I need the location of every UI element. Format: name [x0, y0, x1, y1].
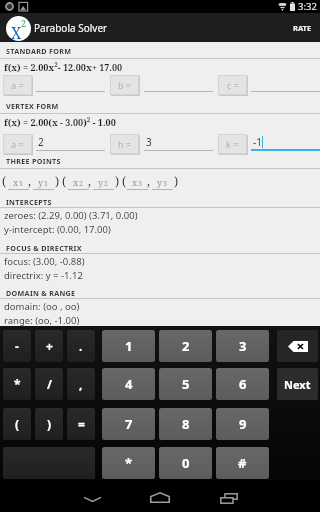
button[interactable]: .	[67, 330, 95, 362]
staticText: ,	[147, 173, 151, 189]
staticText: RATE	[293, 23, 312, 33]
button[interactable]: Home	[138, 480, 182, 512]
staticText: ,	[28, 173, 32, 189]
staticText: x	[13, 176, 19, 188]
button[interactable]: *	[102, 447, 155, 479]
button[interactable]	[36, 75, 105, 92]
button[interactable]: 9	[216, 408, 269, 440]
button[interactable]: -1	[251, 134, 320, 151]
staticText: +	[46, 338, 53, 354]
staticText: 3	[239, 337, 247, 355]
staticText: 8	[182, 415, 190, 433]
staticText: /	[47, 376, 52, 392]
button[interactable]: 3	[144, 134, 213, 151]
staticText: 1	[19, 179, 23, 189]
button[interactable]	[251, 75, 320, 92]
button[interactable]: /	[35, 368, 63, 400]
staticText: 6	[239, 375, 247, 393]
staticText: INTERCEPTS	[6, 197, 52, 207]
staticText: 0	[182, 454, 190, 472]
staticText: )	[174, 173, 179, 189]
staticText: )	[47, 416, 52, 432]
button[interactable]: Next	[277, 368, 318, 400]
staticText: y	[38, 176, 44, 188]
button[interactable]: k =	[218, 134, 248, 154]
button[interactable]: Delete	[277, 330, 318, 362]
staticText: 2	[182, 337, 190, 355]
staticText: Next	[284, 377, 311, 392]
button[interactable]: (	[3, 408, 31, 440]
button[interactable]: y	[152, 170, 173, 190]
staticText: )	[115, 173, 120, 189]
staticText: f(x) = 2.00x²- 12.00x+ 17.00	[4, 61, 123, 73]
button[interactable]: x	[127, 170, 148, 190]
staticText: 3	[146, 135, 152, 149]
staticText: 3	[163, 179, 167, 189]
button[interactable]: 8	[159, 408, 212, 440]
button[interactable]: 4	[102, 368, 155, 400]
button[interactable]: 5	[159, 368, 212, 400]
staticText: y	[157, 176, 163, 188]
button[interactable]: 2	[159, 330, 212, 362]
staticText: x	[73, 176, 79, 188]
button[interactable]: -	[3, 330, 31, 362]
staticText: VERTEX FORM	[6, 101, 59, 111]
button[interactable]: 0	[159, 447, 212, 479]
staticText: 4	[125, 375, 133, 393]
staticText: 1	[44, 179, 48, 189]
button[interactable]: a =	[3, 75, 33, 95]
button[interactable]	[3, 447, 95, 479]
staticText: f(x) = 2.00(x - 3.00)² - 1.00	[4, 116, 116, 128]
staticText: 7	[125, 415, 133, 433]
button[interactable]: 1	[102, 330, 155, 362]
staticText: #	[238, 454, 247, 472]
staticText: y-intercept: (0.00, 17.00)	[4, 223, 111, 236]
button[interactable]: *	[3, 368, 31, 400]
staticText: 1	[125, 337, 133, 355]
button[interactable]: )	[35, 408, 63, 440]
staticText: DOMAIN & RANGE	[6, 288, 76, 298]
button[interactable]: x	[68, 170, 89, 190]
button[interactable]	[144, 75, 213, 92]
staticText: 2	[38, 135, 44, 149]
staticText: x	[132, 176, 138, 188]
button[interactable]: x	[8, 170, 29, 190]
staticText: range: (oo, -1.00)	[4, 314, 80, 327]
button[interactable]: +	[35, 330, 63, 362]
staticText: zeroes: (2.29, 0.00) (3.71, 0.00)	[4, 209, 138, 222]
button[interactable]: y	[93, 170, 114, 190]
button[interactable]: #	[216, 447, 269, 479]
button[interactable]: ,	[67, 368, 95, 400]
button[interactable]: a =	[3, 134, 33, 154]
button[interactable]: 6	[216, 368, 269, 400]
button[interactable]: =	[67, 408, 95, 440]
button[interactable]: 2	[36, 134, 105, 151]
staticText: ,	[88, 173, 92, 189]
staticText: c =	[227, 79, 239, 91]
button[interactable]: 7	[102, 408, 155, 440]
staticText: ,	[79, 376, 83, 392]
staticText: Parabola Solver	[34, 21, 108, 35]
staticText: 2	[104, 179, 108, 189]
staticText: 3:32	[298, 0, 317, 13]
staticText: -1	[253, 135, 262, 149]
staticText: a =	[11, 79, 24, 91]
staticText: FOCUS & DIRECTRIX	[6, 243, 82, 253]
staticText: domain: (oo , oo)	[4, 300, 80, 313]
staticText: 3	[138, 179, 142, 189]
button[interactable]: Hide keyboard	[70, 480, 114, 512]
button[interactable]: c =	[218, 75, 248, 95]
staticText: 5	[182, 375, 190, 393]
staticText: 2	[79, 179, 83, 189]
staticText: *	[125, 454, 133, 472]
staticText: =	[78, 416, 85, 432]
button[interactable]: h =	[110, 134, 140, 154]
button[interactable]: 3	[216, 330, 269, 362]
button[interactable]: Recent apps	[207, 480, 251, 512]
staticText: (	[122, 173, 127, 189]
button[interactable]: y	[33, 170, 54, 190]
button[interactable]: b =	[110, 75, 140, 95]
staticText: (	[15, 416, 20, 432]
button[interactable]: RATE	[285, 13, 320, 42]
staticText: 9	[239, 415, 247, 433]
